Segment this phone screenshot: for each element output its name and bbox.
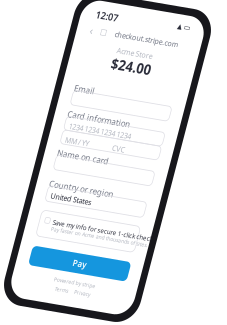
button[interactable]: Pay	[17, 303, 153, 325]
staticText: $24.00	[57, 60, 112, 83]
staticText: 1234 1234 1234 1234	[23, 148, 109, 160]
staticText: Name on card	[17, 181, 88, 195]
staticText: Acme Store	[60, 49, 109, 61]
staticText: checkout.stripe.com	[52, 30, 140, 42]
staticText: Card information	[17, 133, 104, 147]
staticText: CVC	[88, 165, 106, 177]
staticText: Country or region	[17, 219, 106, 233]
staticText: Save my info for secure 1-click checkout	[35, 266, 186, 277]
staticText: Pay faster on Acme and thousands of site…	[35, 275, 169, 284]
staticText: MM / YY	[23, 165, 56, 177]
staticText: Pay	[75, 308, 94, 322]
staticText: United States	[23, 234, 79, 246]
